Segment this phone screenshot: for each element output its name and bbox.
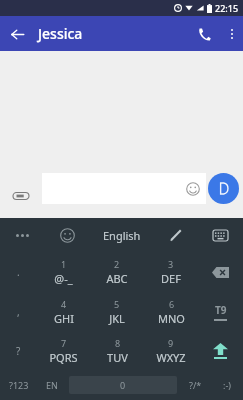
button[interactable]: ?123 (0, 370, 37, 400)
button[interactable]: Handwriting (153, 218, 198, 252)
button[interactable]: 7 (37, 331, 90, 370)
button[interactable]: Back (0, 17, 34, 51)
button[interactable]: Call (187, 17, 221, 51)
button[interactable]: Emoji (180, 176, 206, 202)
staticText: 7 (61, 337, 67, 349)
staticText: ?/* (189, 379, 202, 391)
button[interactable]: T9 mode (198, 292, 243, 331)
staticText: , (17, 305, 20, 319)
button[interactable]: English (90, 218, 153, 252)
button[interactable]: 4 (37, 292, 90, 331)
button[interactable]: 9 (144, 331, 198, 370)
button[interactable]: More (0, 218, 45, 252)
button[interactable]: , (0, 292, 37, 331)
button[interactable]: EN (37, 370, 67, 400)
button[interactable]: 8 (90, 331, 144, 370)
button[interactable]: Shift (198, 331, 243, 370)
staticText: EN (46, 379, 58, 391)
staticText: 0 (120, 379, 126, 391)
button[interactable]: Space (69, 376, 177, 394)
button[interactable]: Attach (6, 181, 36, 211)
button[interactable]: Emoji (45, 218, 90, 252)
button[interactable]: 1 (37, 252, 90, 292)
staticText: ABC (106, 271, 128, 286)
button[interactable]: 5 (90, 292, 144, 331)
staticText: 6 (169, 298, 175, 310)
staticText: 5 (114, 298, 120, 310)
staticText: 4 (61, 298, 67, 310)
button[interactable]: Jessica (38, 24, 83, 43)
button[interactable]: Backspace (198, 252, 243, 292)
button[interactable]: Keyboard settings (198, 218, 243, 252)
staticText: 1 (61, 258, 67, 270)
staticText: 2 (114, 258, 120, 270)
button[interactable]: ?/* (179, 370, 211, 400)
button[interactable]: Emoji (42, 173, 206, 204)
button[interactable]: More options (221, 17, 243, 51)
staticText: ? (16, 344, 21, 358)
staticText: English (103, 228, 141, 243)
button[interactable]: Send (208, 173, 239, 204)
staticText: PQRS (49, 350, 78, 365)
button[interactable]: ? (0, 331, 37, 370)
staticText: . (17, 265, 20, 279)
button[interactable]: 3 (144, 252, 198, 292)
staticText: TUV (107, 350, 128, 365)
staticText: WXYZ (156, 350, 186, 365)
staticText: 22:15 (215, 2, 239, 14)
button[interactable]: :-) (211, 370, 243, 400)
staticText: MNO (158, 311, 185, 326)
staticText: 3 (168, 258, 174, 270)
staticText: 9 (168, 337, 174, 349)
staticText: GHI (54, 311, 74, 326)
staticText: @-_ (54, 271, 73, 286)
staticText: :-) (223, 379, 232, 391)
staticText: T9 (215, 303, 227, 317)
staticText: DEF (161, 271, 181, 286)
button[interactable]: 2 (90, 252, 144, 292)
button[interactable]: 6 (144, 292, 198, 331)
staticText: 8 (115, 337, 121, 349)
staticText: ?123 (9, 379, 29, 391)
staticText: JKL (109, 311, 125, 326)
